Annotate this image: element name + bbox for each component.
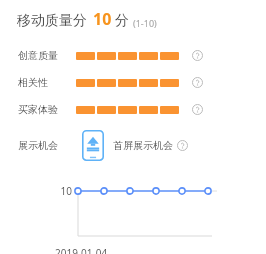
staticText: 展示机会 — [18, 139, 58, 152]
staticText: (1-10) — [133, 17, 157, 29]
staticText: 2019-01-04 — [55, 246, 108, 254]
staticText: 10 — [52, 184, 72, 198]
button[interactable]: 首屏展示机会 — [82, 130, 104, 161]
staticText: 相关性 — [18, 76, 48, 89]
button[interactable]: 首屏展示机会说明 — [177, 140, 188, 151]
staticText: 创意质量 — [18, 49, 58, 62]
button[interactable]: 买家体验说明 — [192, 104, 203, 115]
button[interactable]: 相关性说明 — [192, 77, 203, 88]
button[interactable]: 创意质量说明 — [192, 50, 203, 61]
staticText: 10 — [93, 8, 112, 30]
staticText: 买家体验 — [18, 103, 58, 116]
staticText: 分 — [115, 12, 129, 30]
staticText: 首屏展示机会 — [113, 139, 173, 152]
staticText: 移动质量分 — [17, 12, 87, 30]
